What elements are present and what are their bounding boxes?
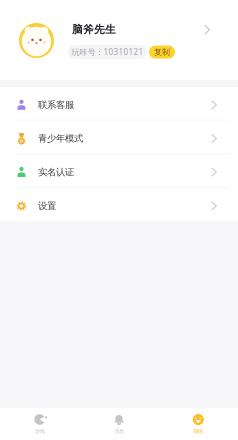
- button[interactable]: 消息: [79, 408, 159, 440]
- button[interactable]: 联系客服: [0, 87, 238, 121]
- button[interactable]: 我的: [159, 408, 238, 440]
- staticText: 实名认证: [38, 166, 74, 178]
- staticText: 玩咔号：10310121: [71, 47, 143, 57]
- staticText: 我的: [193, 428, 203, 434]
- staticText: 复制: [154, 47, 170, 57]
- staticText: 联系客服: [38, 99, 74, 111]
- staticText: 青少年模式: [38, 133, 83, 144]
- button[interactable]: 复制: [149, 45, 175, 58]
- button[interactable]: 游戏: [0, 408, 79, 440]
- staticText: 脑斧先生: [72, 23, 116, 36]
- button[interactable]: 设置: [0, 188, 238, 221]
- button[interactable]: 青少年模式: [0, 121, 238, 154]
- staticText: 消息: [114, 428, 124, 434]
- button[interactable]: 脑斧先生: [0, 0, 238, 80]
- staticText: 游戏: [35, 428, 45, 434]
- button[interactable]: 实名认证: [0, 154, 238, 188]
- staticText: 设置: [38, 200, 56, 212]
